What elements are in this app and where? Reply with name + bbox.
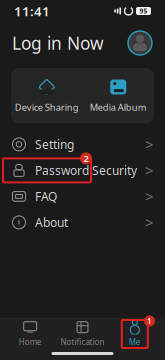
- staticText: Me: [129, 337, 141, 347]
- button[interactable]: Setting: [0, 131, 165, 157]
- staticText: 2: [83, 152, 88, 165]
- button[interactable]: Me: [109, 316, 161, 352]
- staticText: Notification: [60, 337, 104, 347]
- button[interactable]: Log in Now: [12, 31, 104, 54]
- staticText: >: [145, 213, 153, 232]
- staticText: 95: [139, 7, 147, 15]
- button[interactable]: Home: [4, 316, 56, 352]
- staticText: >: [145, 187, 153, 206]
- button[interactable]: FAQ: [0, 183, 165, 209]
- staticText: Password Security: [35, 162, 137, 178]
- button[interactable]: Password Security: [0, 157, 165, 183]
- staticText: 1: [147, 316, 152, 326]
- staticText: Setting: [35, 136, 74, 152]
- staticText: 11:41: [14, 2, 50, 20]
- button[interactable]: Profile: [127, 30, 153, 56]
- staticText: Log in Now: [12, 31, 104, 54]
- staticText: Device Sharing: [15, 101, 79, 113]
- staticText: Home: [19, 337, 42, 347]
- button[interactable]: Notification: [56, 316, 109, 352]
- button[interactable]: Device Sharing: [11, 68, 82, 123]
- button[interactable]: Media Album: [82, 68, 154, 123]
- staticText: FAQ: [35, 188, 57, 204]
- staticText: About: [35, 214, 68, 230]
- staticText: >: [145, 135, 153, 154]
- button[interactable]: About: [0, 209, 165, 235]
- staticText: Media Album: [90, 101, 147, 113]
- staticText: >: [145, 161, 153, 180]
